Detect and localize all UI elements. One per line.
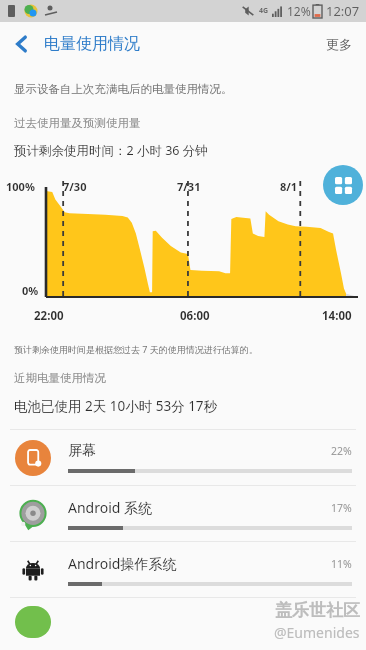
staticText: 14:00 <box>322 308 352 324</box>
staticText: 4G <box>259 6 269 16</box>
staticText: 12:07 <box>326 2 360 20</box>
button[interactable]: 应用列表 <box>323 165 363 205</box>
staticText: 0% <box>22 283 39 298</box>
staticText: @Eumenides <box>274 623 360 642</box>
staticText: Android 系统 <box>68 498 331 517</box>
staticText: 电池已使用 2天 10小时 53分 17秒 <box>14 397 218 415</box>
button[interactable]: 更多 <box>312 26 366 62</box>
staticText: 06:00 <box>180 308 210 324</box>
staticText: Android操作系统 <box>68 554 331 573</box>
staticText: 屏幕 <box>68 442 331 460</box>
staticText: 100% <box>6 179 35 194</box>
button[interactable]: 屏幕 <box>0 430 366 485</box>
staticText: 22:00 <box>34 308 64 324</box>
button[interactable]: 返回 <box>0 22 44 66</box>
staticText: 预计剩余使用时间是根据您过去 7 天的使用情况进行估算的。 <box>14 343 258 355</box>
button[interactable]: Android 系统 <box>0 486 366 541</box>
staticText: 近期电量使用情况 <box>14 371 106 385</box>
staticText: 8/1 <box>280 179 298 194</box>
staticText: 17% <box>331 501 352 515</box>
staticText: 电量使用情况 <box>44 34 140 54</box>
staticText: 显示设备自上次充满电后的电量使用情况。 <box>14 82 233 96</box>
staticText: 7/31 <box>177 179 201 194</box>
staticText: 更多 <box>326 36 352 52</box>
button[interactable]: Android操作系统 <box>0 542 366 597</box>
staticText: 22% <box>331 444 352 458</box>
staticText: 预计剩余使用时间：2 小时 36 分钟 <box>14 142 208 159</box>
staticText: 7/30 <box>63 179 87 194</box>
staticText: 盖乐世社区 <box>275 600 360 621</box>
staticText: 11% <box>331 557 352 571</box>
staticText: 12% <box>287 3 311 19</box>
staticText: 过去使用量及预测使用量 <box>14 116 141 130</box>
